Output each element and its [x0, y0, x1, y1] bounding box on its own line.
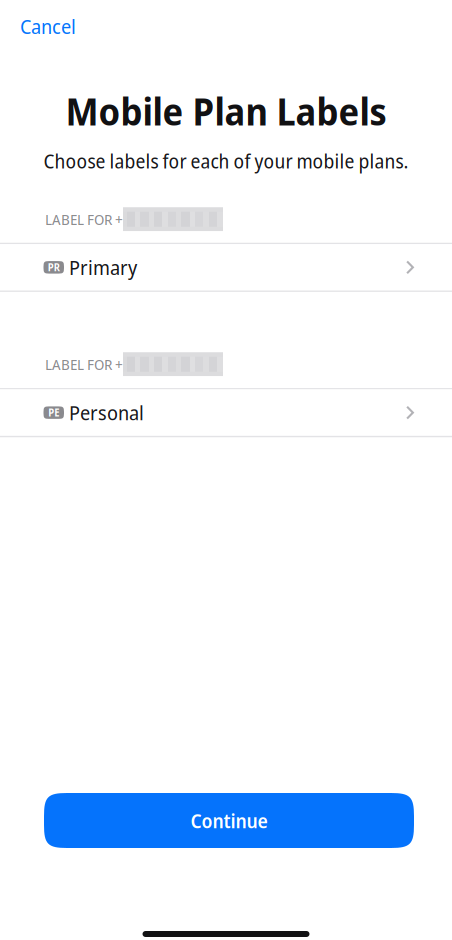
staticText: PR [48, 260, 60, 274]
staticText: Cancel [20, 13, 76, 40]
staticText: Mobile Plan Labels [65, 86, 386, 136]
staticText: Primary [69, 254, 137, 281]
button[interactable]: Continue [44, 793, 414, 848]
staticText: LABEL FOR + [45, 354, 123, 374]
staticText: LABEL FOR + [45, 209, 123, 229]
button[interactable]: Cancel [0, 5, 90, 48]
staticText: Personal [69, 399, 144, 426]
staticText: PE [48, 406, 59, 419]
staticText: Continue [190, 807, 267, 834]
staticText: Choose labels for each of your mobile pl… [43, 147, 408, 174]
button[interactable]: PR [0, 244, 452, 290]
button[interactable]: PE [0, 389, 452, 436]
